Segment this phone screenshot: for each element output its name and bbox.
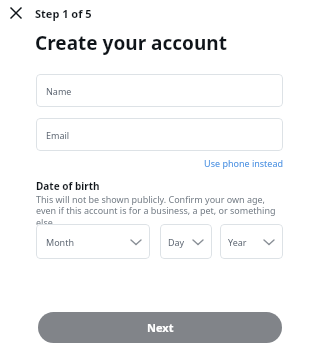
staticText: Next [147,320,174,335]
staticText: Day [168,236,185,248]
staticText: Month [46,236,74,248]
staticText: Date of birth [36,179,100,193]
button[interactable]: Day [160,224,212,259]
staticText: Email [46,129,70,141]
button[interactable]: Year [220,224,283,259]
staticText: Step 1 of 5 [35,6,92,21]
button[interactable]: Use phone instead [190,155,283,170]
button[interactable]: Close [6,3,26,23]
staticText: Use phone instead [190,157,283,169]
button[interactable]: Email [36,118,283,151]
staticText: This will not be shown publicly. Confirm… [36,193,287,229]
staticText: Create your account [35,30,227,56]
staticText: Year [228,236,247,248]
button[interactable]: Next [38,312,282,343]
staticText: Name [46,85,72,97]
button[interactable]: Month [36,224,150,259]
button[interactable]: Name [36,74,283,107]
